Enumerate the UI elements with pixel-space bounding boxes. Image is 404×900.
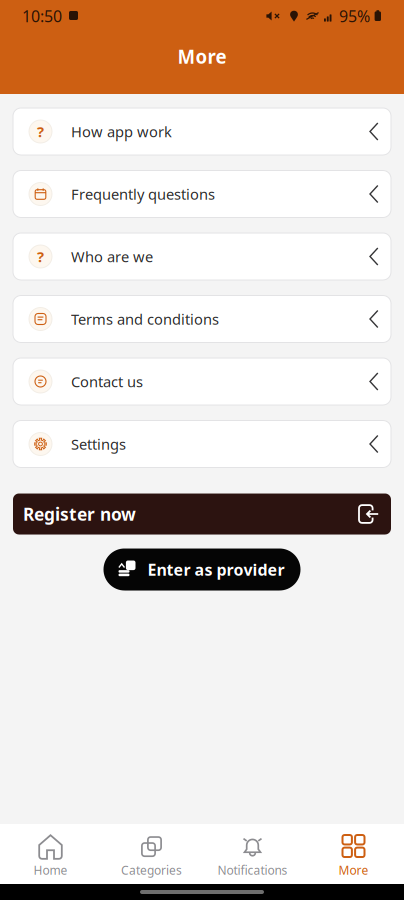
staticText: Settings	[71, 434, 126, 454]
button[interactable]: More	[303, 824, 404, 884]
button[interactable]: ?	[13, 233, 391, 280]
staticText: More	[177, 44, 226, 69]
staticText: More	[338, 862, 368, 878]
staticText: Register now	[23, 502, 136, 525]
staticText: 95%	[339, 5, 370, 27]
staticText: Home	[33, 862, 67, 878]
button[interactable]: Frequently questions	[13, 170, 391, 217]
button[interactable]: Settings	[13, 420, 391, 467]
staticText: Categories	[121, 862, 182, 878]
staticText: ?	[37, 247, 44, 266]
staticText: Terms and conditions	[71, 309, 219, 329]
button[interactable]: Terms and conditions	[13, 295, 391, 342]
staticText: Frequently questions	[71, 184, 215, 204]
staticText: ?	[37, 122, 44, 141]
staticText: 10:50	[22, 5, 62, 27]
staticText: Notifications	[217, 862, 287, 878]
staticText: Enter as provider	[147, 559, 284, 580]
button[interactable]: Home	[0, 824, 101, 884]
button[interactable]: Notifications	[202, 824, 303, 884]
button[interactable]: Categories	[101, 824, 202, 884]
staticText: Who are we	[71, 247, 153, 266]
button[interactable]: Register now	[13, 493, 391, 534]
staticText: Contact us	[71, 372, 143, 391]
staticText: How app work	[71, 122, 172, 141]
button[interactable]: ?	[13, 108, 391, 155]
button[interactable]: Contact us	[13, 358, 391, 405]
button[interactable]: Enter as provider	[103, 548, 300, 590]
